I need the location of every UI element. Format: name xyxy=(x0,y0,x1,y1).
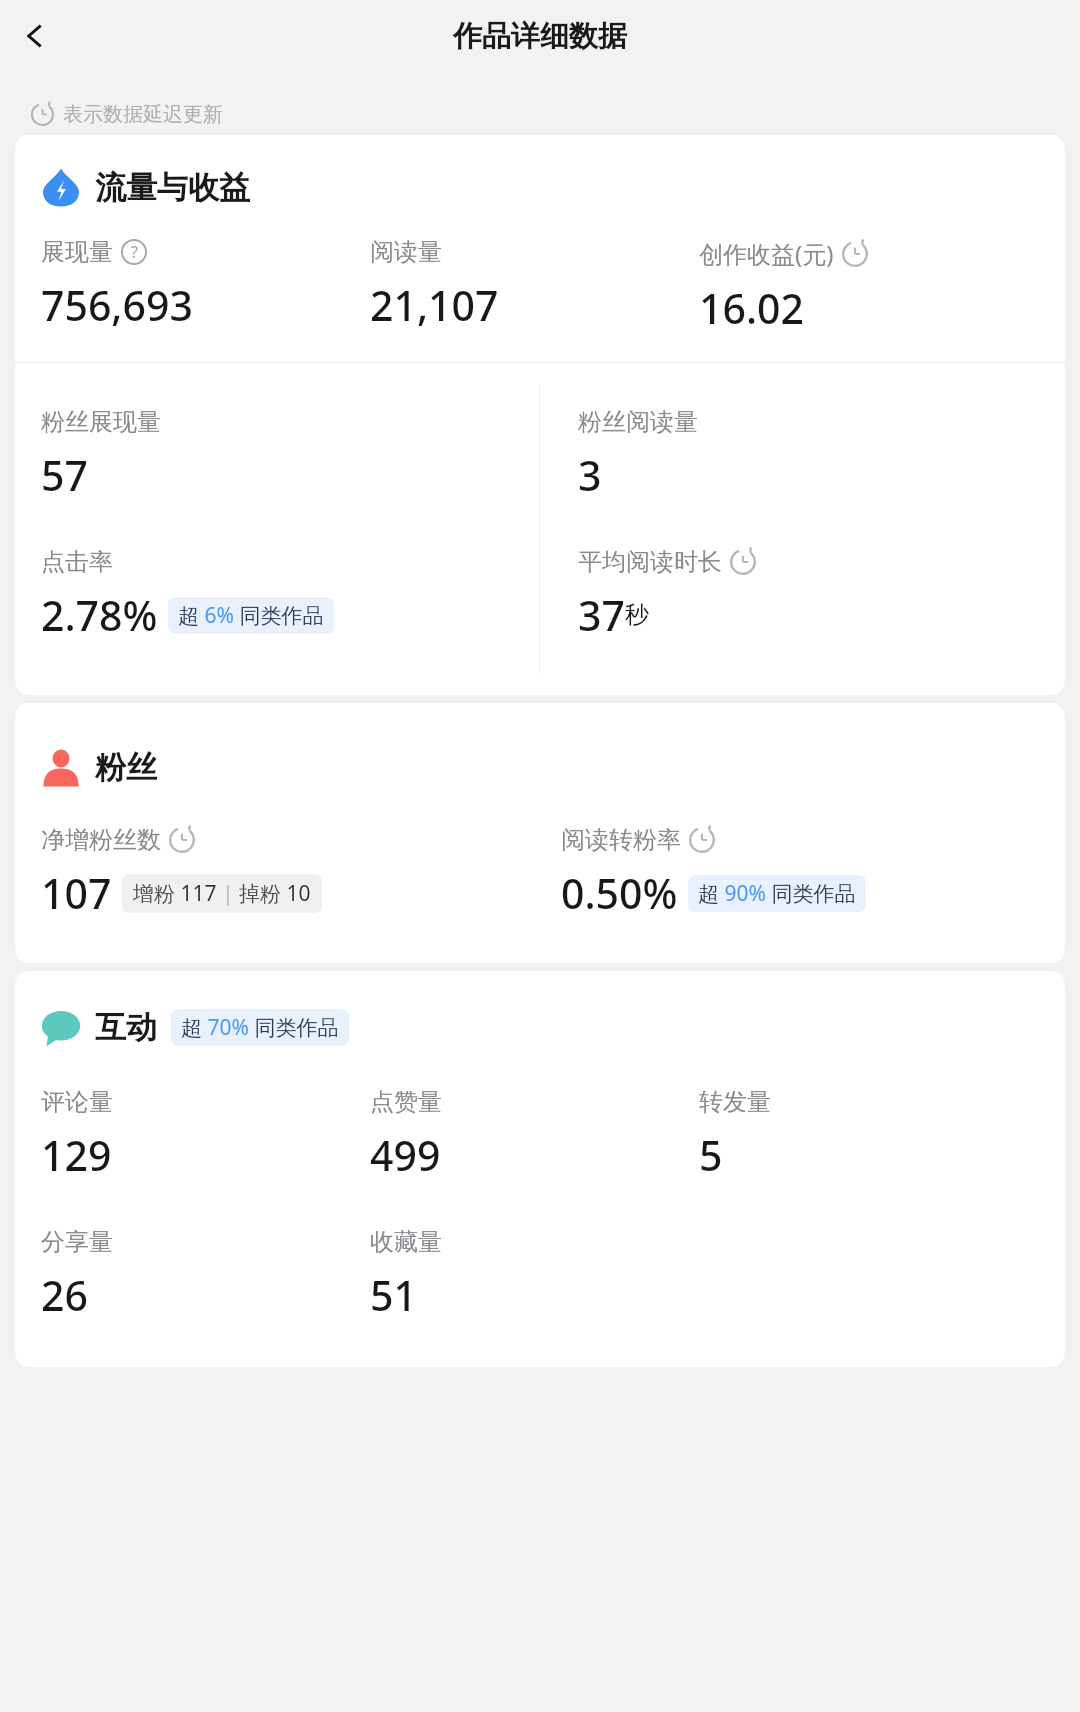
staticText: 129 xyxy=(41,1127,112,1183)
staticText: 秒 xyxy=(625,600,649,630)
staticText: 超 90% 同类作品 xyxy=(698,879,856,908)
staticText: 点击率 xyxy=(41,547,113,577)
staticText: 107 xyxy=(41,865,112,921)
button[interactable]: 增粉 117 | 掉粉 10 xyxy=(122,874,322,913)
button[interactable]: 分享量 xyxy=(41,1227,113,1323)
button[interactable]: Back xyxy=(8,8,64,64)
button[interactable]: 净增粉丝数 xyxy=(41,825,322,921)
button[interactable]: 阅读量 xyxy=(370,237,499,333)
button[interactable]: 点击率 xyxy=(41,547,334,643)
staticText: 26 xyxy=(41,1267,88,1323)
staticText: 点赞量 xyxy=(370,1087,442,1117)
button[interactable]: 说明 xyxy=(121,239,147,265)
staticText: 表示数据延迟更新 xyxy=(63,102,223,127)
button[interactable]: 超 90% 同类作品 xyxy=(688,875,866,912)
staticText: 5 xyxy=(699,1127,723,1183)
staticText: 收藏量 xyxy=(370,1227,442,1257)
staticText: 37 xyxy=(578,587,625,643)
staticText: 创作收益(元) xyxy=(699,237,834,270)
staticText: 粉丝 xyxy=(95,748,157,787)
staticText: 展现量 xyxy=(41,237,113,267)
button[interactable]: 粉丝阅读量 xyxy=(578,407,698,503)
staticText: ? xyxy=(131,241,138,263)
staticText: 阅读转粉率 xyxy=(561,825,681,855)
staticText: 平均阅读时长 xyxy=(578,547,722,577)
staticText: 净增粉丝数 xyxy=(41,825,161,855)
button[interactable]: 展现量 xyxy=(41,237,193,333)
staticText: 增粉 117 | 掉粉 10 xyxy=(133,879,311,908)
staticText: 阅读量 xyxy=(370,237,442,267)
staticText: 转发量 xyxy=(699,1087,771,1117)
staticText: 0.50% xyxy=(561,865,678,921)
button[interactable]: 超 70% 同类作品 xyxy=(171,1009,349,1046)
staticText: 3 xyxy=(578,447,602,503)
button[interactable]: 创作收益(元) xyxy=(699,237,868,336)
staticText: 粉丝展现量 xyxy=(41,407,161,437)
button[interactable]: 超 6% 同类作品 xyxy=(168,597,334,634)
staticText: 2.78% xyxy=(41,587,158,643)
button[interactable]: 收藏量 xyxy=(370,1227,442,1323)
staticText: 57 xyxy=(41,447,88,503)
staticText: 流量与收益 xyxy=(95,168,250,207)
staticText: 评论量 xyxy=(41,1087,113,1117)
staticText: 超 6% 同类作品 xyxy=(178,601,324,630)
button[interactable]: 点赞量 xyxy=(370,1087,442,1183)
button[interactable]: 粉丝展现量 xyxy=(41,407,161,503)
staticText: 超 70% 同类作品 xyxy=(181,1013,339,1042)
staticText: 51 xyxy=(370,1267,417,1323)
staticText: 16.02 xyxy=(699,280,804,336)
staticText: 756,693 xyxy=(41,277,193,333)
staticText: 21,107 xyxy=(370,277,499,333)
staticText: 互动 xyxy=(95,1008,157,1047)
staticText: 粉丝阅读量 xyxy=(578,407,698,437)
staticText: 分享量 xyxy=(41,1227,113,1257)
button[interactable]: 评论量 xyxy=(41,1087,113,1183)
button[interactable]: 阅读转粉率 xyxy=(561,825,866,921)
button[interactable]: 平均阅读时长 xyxy=(578,547,756,643)
button[interactable]: 转发量 xyxy=(699,1087,771,1183)
staticText: 499 xyxy=(370,1127,441,1183)
staticText: 作品详细数据 xyxy=(453,18,627,55)
